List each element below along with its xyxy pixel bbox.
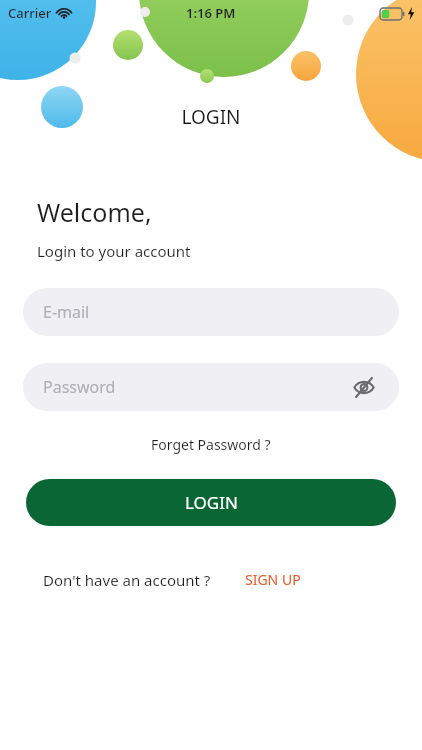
staticText: Welcome, — [37, 195, 152, 229]
staticText: LOGIN — [0, 104, 422, 130]
button[interactable]: LOGIN — [26, 479, 396, 526]
staticText: SIGN UP — [245, 570, 301, 589]
button[interactable]: SIGN UP — [241, 566, 305, 593]
staticText: E-mail — [43, 301, 90, 323]
staticText: Password — [43, 376, 116, 398]
button[interactable]: Forget Password ? — [143, 431, 279, 458]
button[interactable]: Show password — [349, 372, 379, 402]
staticText: Don't have an account ? — [43, 570, 211, 590]
button[interactable]: E-mail — [23, 288, 399, 336]
staticText: 1:16 PM — [186, 4, 236, 22]
staticText: Carrier — [8, 4, 52, 22]
button[interactable]: Password — [23, 363, 399, 411]
staticText: Login to your account — [37, 241, 191, 261]
staticText: Forget Password ? — [151, 435, 271, 454]
staticText: LOGIN — [185, 491, 238, 514]
